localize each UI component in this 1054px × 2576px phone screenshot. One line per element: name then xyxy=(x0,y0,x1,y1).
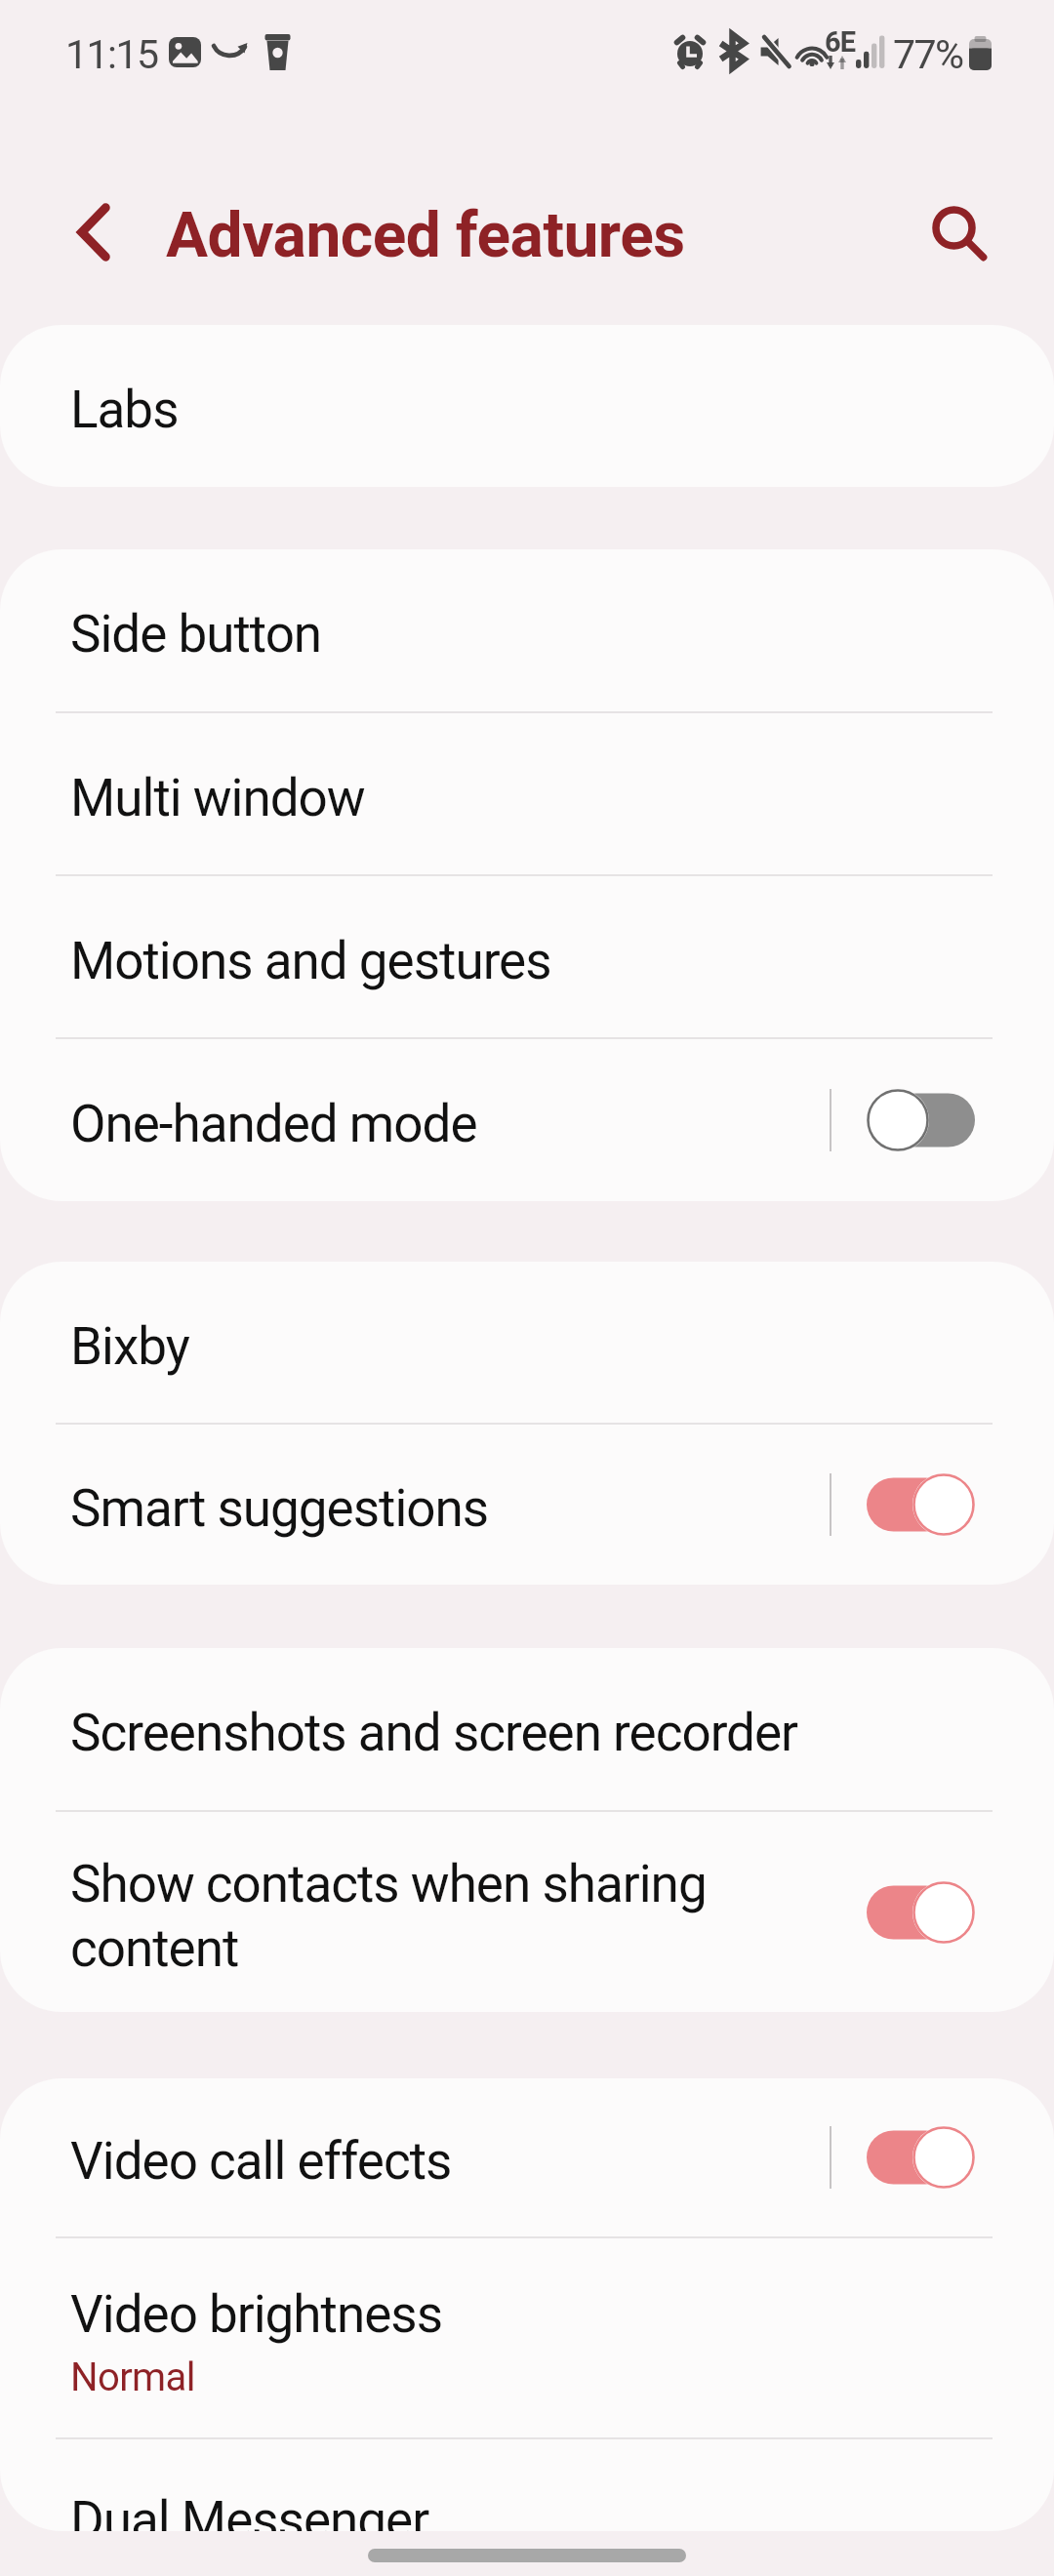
button[interactable]: Bixby xyxy=(0,1262,1054,1423)
staticText: Screenshots and screen recorder xyxy=(70,1703,798,1763)
staticText: Smart suggestions xyxy=(70,1478,489,1539)
button[interactable]: Side button xyxy=(0,549,1054,711)
button[interactable]: Multi window xyxy=(0,713,1054,874)
button[interactable]: Smart suggestions switch xyxy=(867,1471,975,1538)
staticText: Dual Messenger xyxy=(70,2490,429,2531)
staticText: Show contacts when sharing content xyxy=(70,1854,714,1979)
staticText: One-handed mode xyxy=(70,1094,477,1154)
staticText: Motions and gestures xyxy=(70,931,551,991)
button[interactable]: One-handed mode xyxy=(0,1039,1054,1201)
staticText: Video call effects xyxy=(70,2131,452,2192)
staticText: Multi window xyxy=(70,768,365,828)
staticText: Labs xyxy=(70,380,179,440)
staticText: Advanced features xyxy=(166,199,685,272)
button[interactable]: Video call effects xyxy=(0,2078,1054,2236)
button[interactable]: Show contacts when sharing content xyxy=(0,1812,1054,2012)
staticText: 77% xyxy=(893,31,963,78)
staticText: 11:15 xyxy=(65,31,158,78)
button[interactable]: Search xyxy=(908,184,1009,286)
button[interactable]: Smart suggestions xyxy=(0,1425,1054,1585)
button[interactable]: Video brightness xyxy=(0,2238,1054,2437)
staticText: Bixby xyxy=(70,1316,189,1377)
staticText: Side button xyxy=(70,604,322,664)
staticText: 6E xyxy=(825,25,855,59)
staticText: Normal xyxy=(70,2355,195,2400)
button[interactable]: Dual Messenger xyxy=(0,2404,1054,2531)
button[interactable]: Motions and gestures xyxy=(0,876,1054,1037)
button[interactable]: Labs xyxy=(0,325,1054,487)
button[interactable]: Show contacts when sharing content switc… xyxy=(867,1879,975,1946)
button[interactable]: Navigate up xyxy=(43,184,144,286)
button[interactable]: Video call effects switch xyxy=(867,2124,975,2191)
button[interactable]: One-handed mode switch xyxy=(867,1087,975,1153)
button[interactable]: Screenshots and screen recorder xyxy=(0,1648,1054,1810)
staticText: Video brightness xyxy=(70,2284,442,2345)
